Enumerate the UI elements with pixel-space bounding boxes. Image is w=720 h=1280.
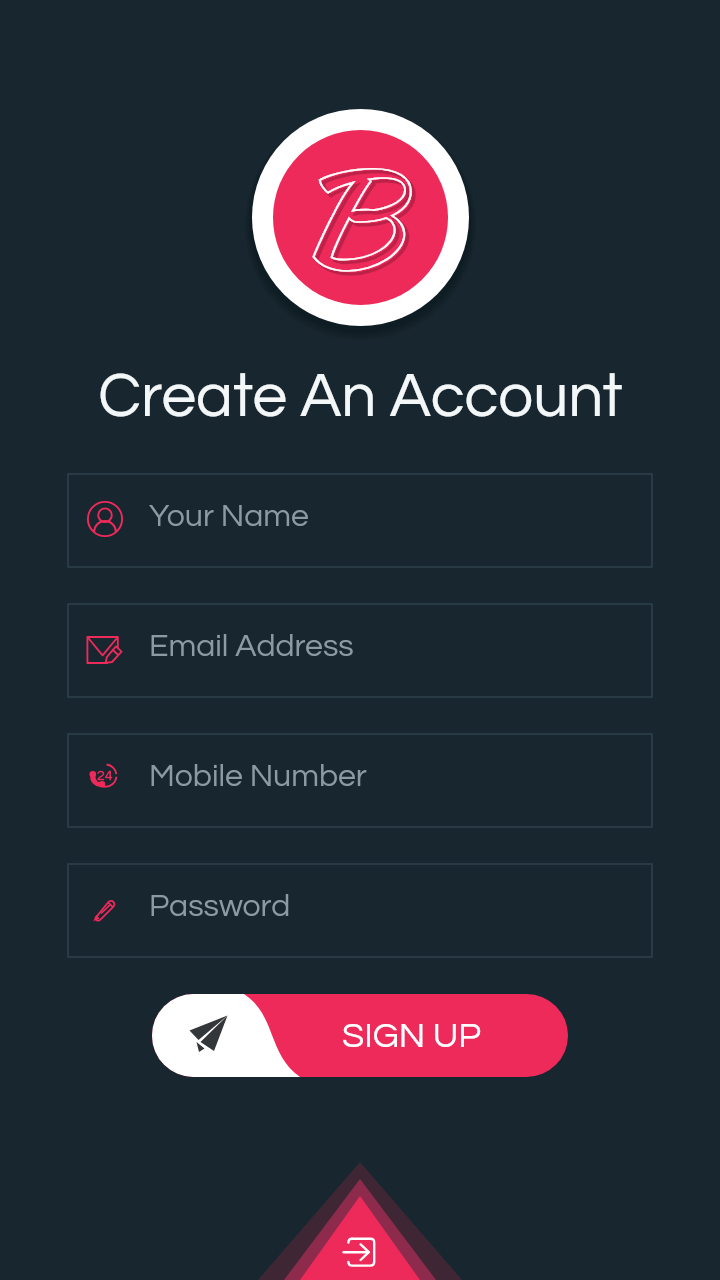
staticText: SIGN UP [342,1017,481,1054]
button[interactable]: Log in [330,1227,390,1279]
staticText: 24 [97,769,113,783]
staticText: Mobile Number [149,760,367,793]
staticText: Email Address [149,630,354,663]
staticText: Create An Account [98,365,623,429]
button[interactable]: Your Name [68,474,652,567]
button[interactable]: 24 [68,734,652,827]
staticText: B [248,123,446,306]
staticText: Password [149,890,291,923]
staticText: B [251,126,449,309]
button[interactable]: Email Address [68,604,652,697]
button[interactable]: Password [68,864,652,957]
staticText: Your Name [149,500,309,533]
button[interactable]: SIGN UP [152,994,568,1077]
